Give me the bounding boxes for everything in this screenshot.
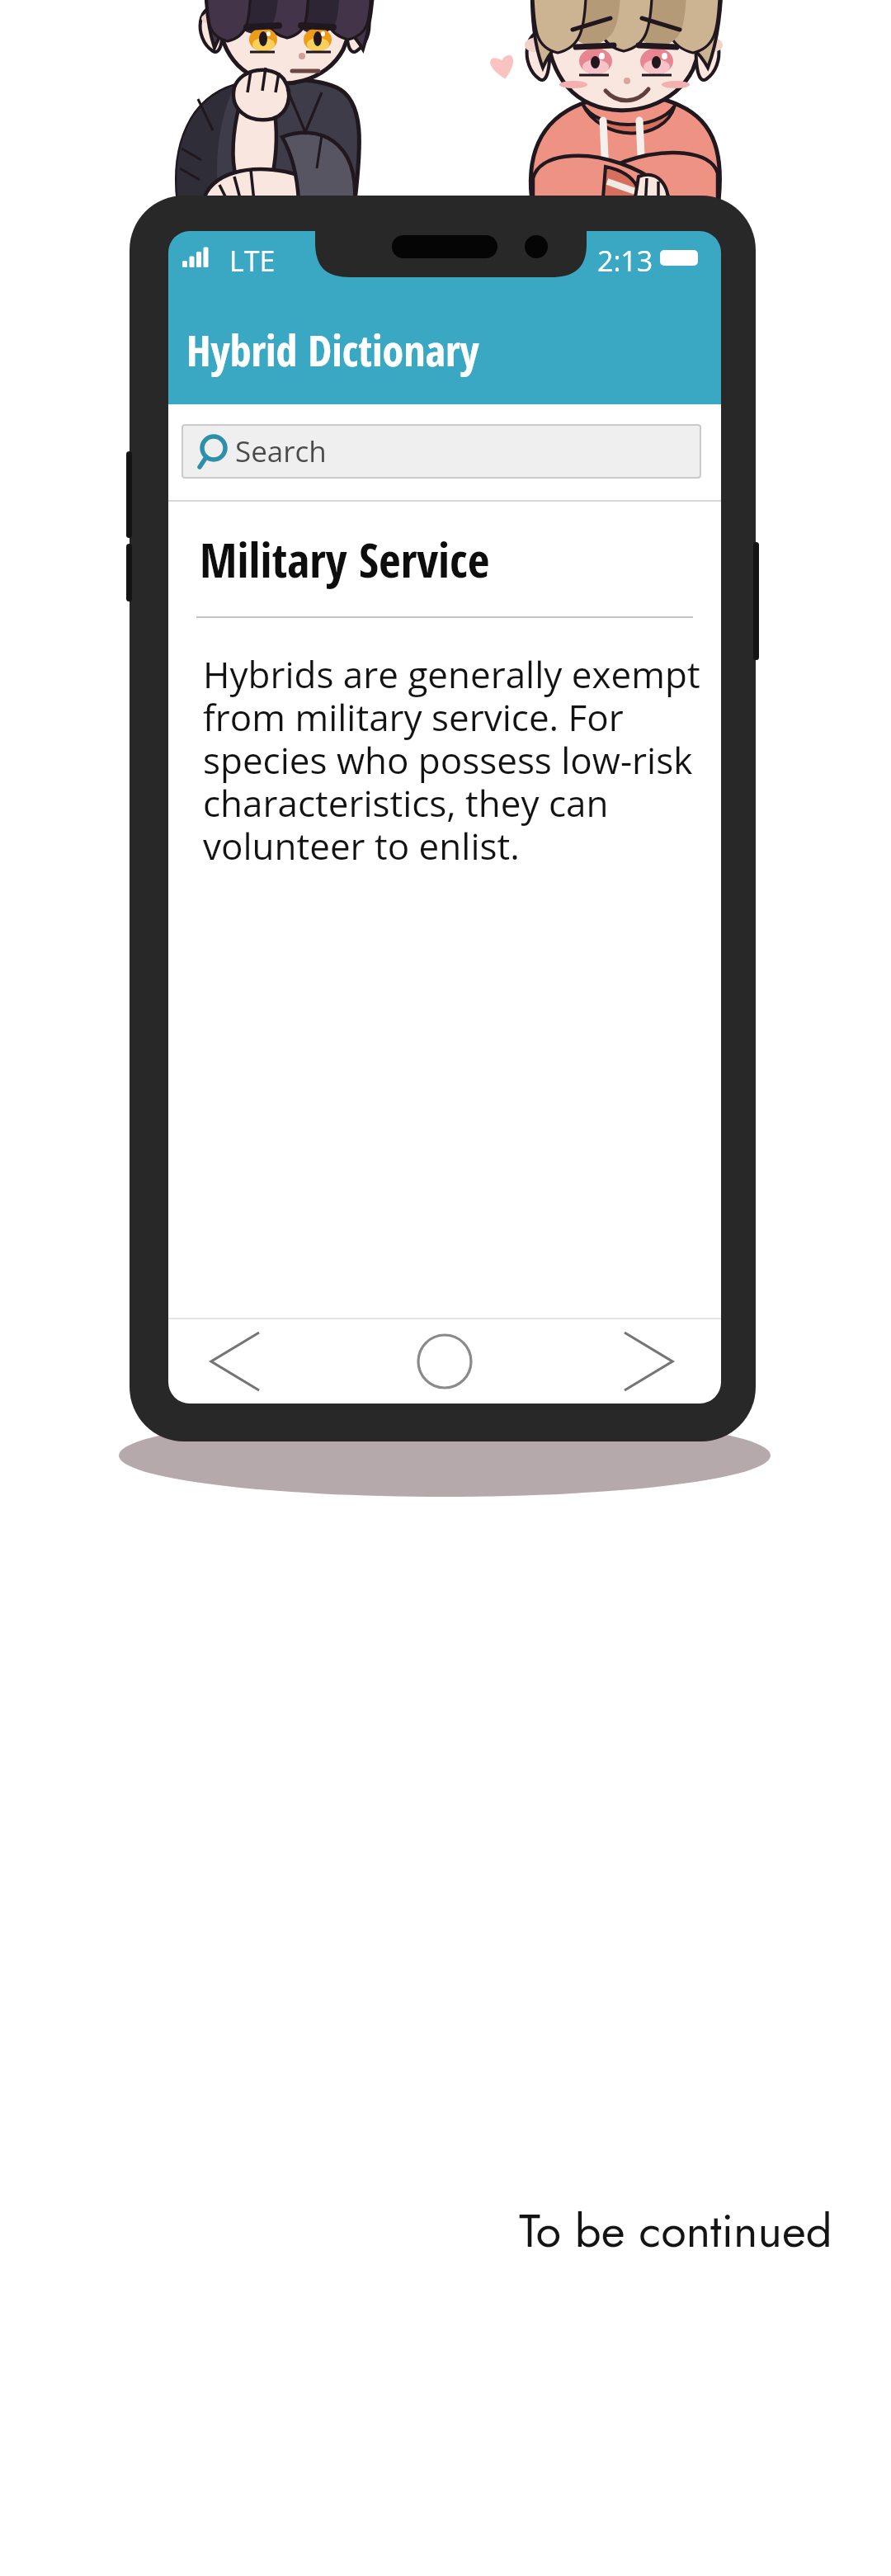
staticText: Search [235, 432, 327, 471]
button[interactable]: Forward [570, 1319, 721, 1404]
staticText: To be continued [519, 2197, 832, 2264]
staticText: Hybrid Dictionary [186, 320, 479, 379]
staticText: LTE [229, 242, 276, 280]
staticText: Hybrids are generally exempt from milita… [203, 649, 711, 870]
button[interactable]: Back [168, 1319, 313, 1404]
staticText: Military Service [200, 526, 490, 592]
staticText: 2:13 [597, 242, 653, 280]
button[interactable]: Home [366, 1319, 523, 1404]
button[interactable]: Search [181, 424, 701, 479]
